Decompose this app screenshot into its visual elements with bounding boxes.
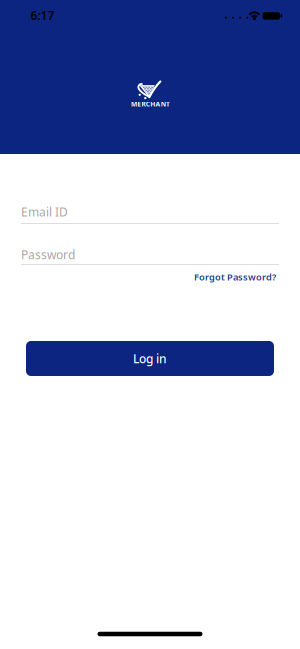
button[interactable]: Log in <box>26 341 274 376</box>
staticText: MERCHANT <box>131 100 170 108</box>
staticText: Email ID <box>21 204 68 220</box>
staticText: Log in <box>133 350 167 366</box>
staticText: Password <box>21 246 75 262</box>
button[interactable]: Email ID <box>21 199 279 224</box>
button[interactable]: Forgot Password? <box>194 271 276 283</box>
button[interactable]: Password <box>21 242 279 267</box>
staticText: 6:17 <box>30 7 54 23</box>
staticText: Forgot Password? <box>194 271 276 283</box>
